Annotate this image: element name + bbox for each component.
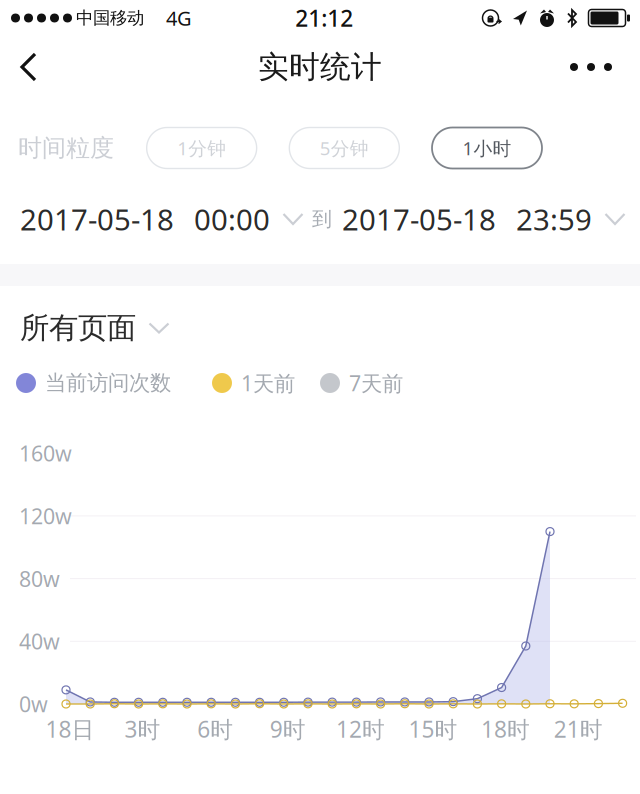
- button[interactable]: 2017-05-18: [0, 199, 304, 238]
- staticText: 时间粒度: [18, 133, 114, 163]
- staticText: 2017-05-18: [20, 199, 174, 238]
- staticText: 12时: [336, 714, 385, 744]
- staticText: 21:12: [295, 3, 353, 33]
- button[interactable]: More: [544, 43, 640, 91]
- staticText: 7天前: [349, 369, 403, 397]
- staticText: 18日: [45, 714, 94, 744]
- button[interactable]: Back: [0, 38, 64, 96]
- button[interactable]: 1小时: [432, 127, 542, 168]
- staticText: 实时统计: [258, 48, 382, 86]
- staticText: 1小时: [462, 136, 511, 160]
- button[interactable]: 所有页面: [0, 300, 170, 356]
- staticText: 23:59: [516, 199, 592, 238]
- staticText: 到: [312, 207, 332, 231]
- staticText: 00:00: [194, 199, 270, 238]
- staticText: 5分钟: [320, 136, 369, 160]
- staticText: 1分钟: [177, 136, 226, 160]
- staticText: 21时: [554, 714, 603, 744]
- staticText: 2017-05-18: [342, 199, 496, 238]
- staticText: 9时: [270, 714, 306, 744]
- staticText: 160w: [19, 439, 72, 467]
- staticText: 所有页面: [20, 310, 136, 346]
- staticText: 6时: [197, 714, 233, 744]
- button[interactable]: 2017-05-18: [332, 199, 626, 238]
- staticText: 中国移动: [76, 7, 144, 29]
- staticText: 当前访问次数: [45, 370, 171, 396]
- staticText: 40w: [19, 627, 60, 655]
- button[interactable]: 1分钟: [147, 127, 257, 168]
- staticText: 80w: [19, 564, 60, 593]
- staticText: 1天前: [241, 369, 295, 397]
- staticText: 4G: [166, 5, 192, 31]
- staticText: 3时: [125, 714, 161, 744]
- staticText: 0w: [19, 690, 48, 718]
- button[interactable]: 5分钟: [289, 127, 399, 168]
- staticText: 120w: [19, 502, 72, 530]
- staticText: 15时: [408, 714, 457, 744]
- staticText: 18时: [481, 714, 530, 744]
